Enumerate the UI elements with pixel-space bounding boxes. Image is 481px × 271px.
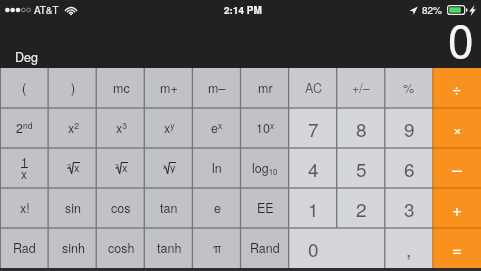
staticText: 2:14 PM [224,3,262,17]
staticText: sinh [62,239,85,257]
staticText: Deg [15,48,38,66]
staticText: 5 [356,155,367,182]
staticText: ln [212,159,222,177]
button[interactable]: 8 [337,108,385,148]
staticText: +/– [352,79,370,97]
button[interactable]: 2 [49,148,97,188]
button[interactable]: sin [49,188,97,228]
staticText: 4 [308,155,319,182]
staticText: sin [65,199,81,217]
staticText: tan [160,199,178,217]
button[interactable]: EE [241,188,289,228]
staticText: ÷ [452,77,462,100]
button[interactable]: π [193,228,241,268]
staticText: % [403,79,415,97]
staticText: Rand [250,239,280,257]
staticText: , [406,235,412,262]
button[interactable]: e [193,188,241,228]
staticText: y [170,159,176,173]
staticText: xy [164,119,175,137]
staticText: e [214,199,221,217]
button[interactable]: Deg [11,47,42,67]
button[interactable]: x3 [97,108,145,148]
button[interactable]: ÷ [433,68,481,108]
button[interactable]: AC [289,68,337,108]
button[interactable]: ( [0,68,49,108]
button[interactable]: ex [193,108,241,148]
button[interactable]: 3 [97,148,145,188]
button[interactable]: m– [193,68,241,108]
staticText: 2nd [16,119,33,137]
button[interactable]: 6 [385,148,433,188]
staticText: – [452,155,463,181]
staticText: 3 [404,195,415,222]
button[interactable]: 7 [289,108,337,148]
staticText: log10 [252,159,278,177]
button[interactable]: 1 [0,148,49,188]
button[interactable]: 1 [289,188,337,228]
button[interactable]: , [385,228,433,268]
staticText: 6 [404,155,415,182]
button[interactable]: = [433,228,481,268]
button[interactable]: ln [193,148,241,188]
staticText: x! [20,199,30,217]
staticText: 0 [308,235,319,262]
button[interactable]: xy [145,108,193,148]
button[interactable]: × [433,108,481,148]
button[interactable]: Rand [241,228,289,268]
staticText: ( [22,79,27,97]
button[interactable]: Rad [0,228,49,268]
button[interactable]: 5 [337,148,385,188]
button[interactable]: mr [241,68,289,108]
staticText: = [452,236,462,260]
staticText: x [21,165,28,182]
staticText: 0 [448,5,474,71]
button[interactable]: mc [97,68,145,108]
button[interactable]: 4 [289,148,337,188]
staticText: ) [71,79,76,97]
button[interactable]: 0 [289,228,385,268]
staticText: x [122,159,128,173]
staticText: 1 [21,153,28,170]
staticText: x2 [68,119,79,137]
button[interactable]: +/– [337,68,385,108]
staticText: 2 [67,161,71,171]
button[interactable]: 3 [385,188,433,228]
button[interactable]: % [385,68,433,108]
staticText: cos [111,199,131,217]
staticText: x3 [116,119,127,137]
staticText: mr [258,79,273,97]
button[interactable]: tan [145,188,193,228]
button[interactable]: 2nd [0,108,49,148]
staticText: 7 [308,115,319,142]
button[interactable]: cosh [97,228,145,268]
staticText: tanh [157,239,182,257]
staticText: ex [211,119,223,137]
button[interactable]: 9 [385,108,433,148]
button[interactable]: sinh [49,228,97,268]
button[interactable]: tanh [145,228,193,268]
button[interactable]: cos [97,188,145,228]
button[interactable]: ) [49,68,97,108]
button[interactable]: – [433,148,481,188]
staticText: 9 [404,115,415,142]
button[interactable]: 2 [337,188,385,228]
button[interactable]: x! [0,188,49,228]
button[interactable]: log10 [241,148,289,188]
button[interactable]: 10x [241,108,289,148]
staticText: AC [305,79,322,97]
staticText: 10x [256,119,275,137]
staticText: + [452,196,462,220]
staticText: AT&T [34,3,59,17]
staticText: × [453,118,462,139]
staticText: EE [257,199,274,217]
button[interactable]: x2 [49,108,97,148]
button[interactable]: m+ [145,68,193,108]
button[interactable]: + [433,188,481,228]
staticText: x [163,161,167,171]
button[interactable]: x [145,148,193,188]
staticText: mc [113,79,130,97]
staticText: 82% [422,3,443,17]
staticText: 2 [356,195,367,222]
staticText: m– [208,79,226,97]
